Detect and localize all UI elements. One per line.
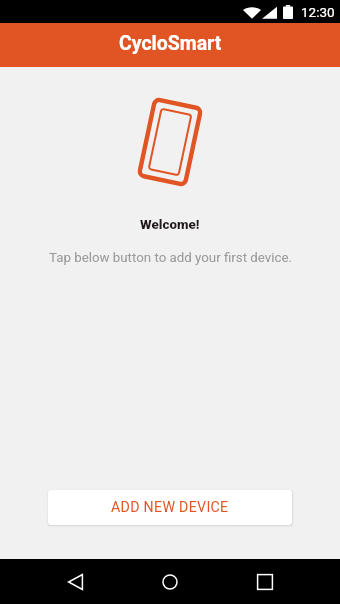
button[interactable]: ADD NEW DEVICE <box>48 490 292 525</box>
staticText: 12:30 <box>301 4 335 20</box>
staticText: Welcome! <box>140 217 200 233</box>
staticText: CycloSmart <box>119 32 222 55</box>
button[interactable]: Home <box>148 560 192 604</box>
button[interactable]: Recent apps <box>243 560 287 604</box>
button[interactable]: Back <box>53 560 97 604</box>
staticText: Tap below button to add your first devic… <box>49 250 292 266</box>
staticText: ADD NEW DEVICE <box>111 499 229 516</box>
